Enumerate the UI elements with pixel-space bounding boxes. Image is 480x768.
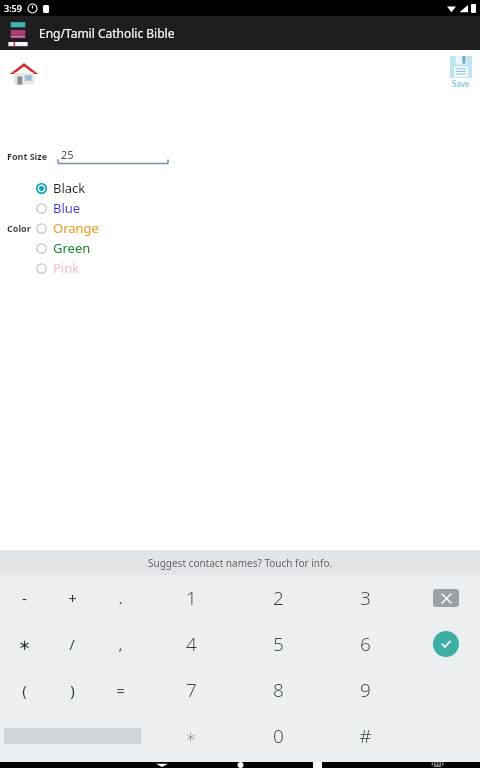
- staticText: #: [359, 723, 372, 749]
- staticText: Suggest contact names? Touch for info.: [148, 556, 333, 570]
- button[interactable]: Switch keyboard: [423, 762, 451, 768]
- button[interactable]: 25: [58, 147, 168, 165]
- button[interactable]: 6: [335, 621, 395, 667]
- button[interactable]: Home: [226, 762, 254, 768]
- button[interactable]: Orange: [36, 218, 99, 238]
- button[interactable]: Black: [36, 178, 86, 198]
- staticText: Green: [53, 239, 91, 257]
- staticText: Save: [452, 78, 470, 89]
- button[interactable]: =: [96, 667, 144, 713]
- button[interactable]: Save: [450, 56, 472, 89]
- button[interactable]: 8: [248, 667, 308, 713]
- button[interactable]: Blue: [36, 198, 81, 218]
- staticText: 1: [186, 585, 197, 611]
- staticText: Eng/Tamil Catholic Bible: [39, 25, 175, 41]
- staticText: (: [22, 680, 27, 700]
- staticText: ∗: [185, 725, 197, 747]
- staticText: /: [69, 634, 75, 654]
- staticText: 2: [273, 585, 284, 611]
- staticText: ): [70, 680, 75, 700]
- button[interactable]: 9: [335, 667, 395, 713]
- staticText: =: [116, 680, 125, 700]
- staticText: 6: [360, 631, 371, 657]
- staticText: 25: [61, 147, 74, 162]
- button[interactable]: #: [335, 713, 395, 759]
- staticText: .: [118, 588, 123, 608]
- staticText: Orange: [53, 219, 99, 237]
- button[interactable]: Suggest contact names? Touch for info.: [0, 550, 480, 575]
- button[interactable]: ,: [96, 621, 144, 667]
- staticText: 5: [273, 631, 284, 657]
- button[interactable]: Recent apps: [303, 762, 331, 768]
- button[interactable]: 1: [161, 575, 221, 621]
- button[interactable]: Back: [148, 762, 176, 768]
- staticText: ,: [118, 634, 123, 654]
- staticText: 4: [186, 631, 197, 657]
- button[interactable]: Pink: [36, 258, 80, 278]
- button[interactable]: +: [48, 575, 96, 621]
- button[interactable]: ∗: [161, 713, 221, 759]
- staticText: Color: [7, 222, 31, 234]
- button[interactable]: .: [96, 575, 144, 621]
- button[interactable]: 3: [335, 575, 395, 621]
- staticText: 9: [360, 677, 371, 703]
- staticText: ∗: [18, 636, 31, 653]
- staticText: 7: [186, 677, 197, 703]
- button[interactable]: Enter: [433, 631, 459, 657]
- button[interactable]: /: [48, 621, 96, 667]
- button[interactable]: 7: [161, 667, 221, 713]
- button[interactable]: 2: [248, 575, 308, 621]
- staticText: -: [22, 588, 27, 608]
- button[interactable]: Green: [36, 238, 91, 258]
- staticText: 0: [273, 723, 284, 749]
- staticText: 3:59: [4, 2, 22, 14]
- staticText: 3: [360, 585, 371, 611]
- button[interactable]: 4: [161, 621, 221, 667]
- staticText: Black: [53, 179, 86, 197]
- staticText: 8: [273, 677, 284, 703]
- staticText: Font Size: [7, 150, 48, 162]
- staticText: Pink: [53, 259, 80, 277]
- button[interactable]: 0: [248, 713, 308, 759]
- staticText: Blue: [53, 199, 81, 217]
- button[interactable]: -: [0, 575, 48, 621]
- button[interactable]: (: [0, 667, 48, 713]
- button[interactable]: Backspace: [433, 589, 459, 607]
- button[interactable]: Home: [6, 57, 42, 93]
- button[interactable]: 5: [248, 621, 308, 667]
- button[interactable]: ∗: [0, 621, 48, 667]
- button[interactable]: ): [48, 667, 96, 713]
- staticText: +: [68, 588, 77, 608]
